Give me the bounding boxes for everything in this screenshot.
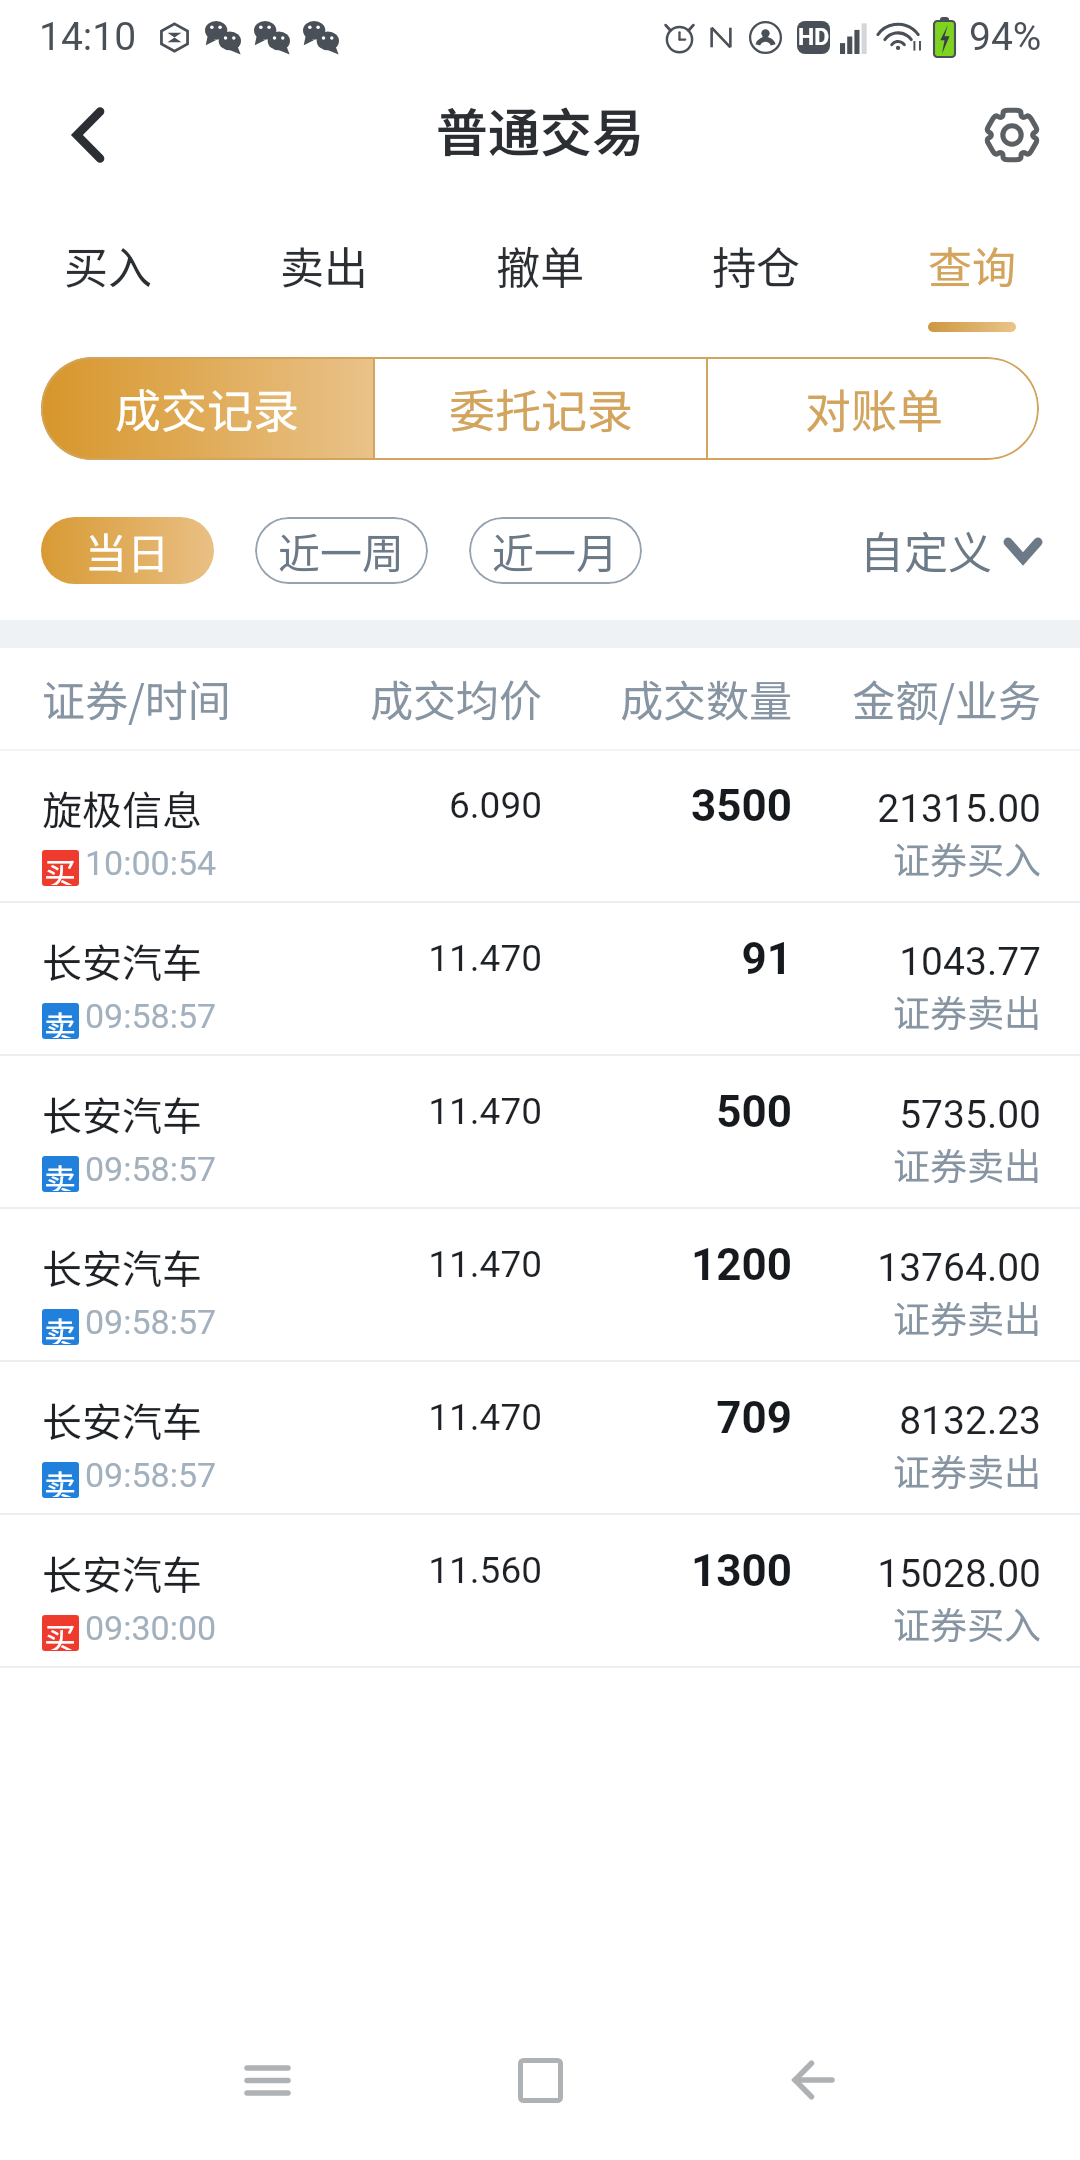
staticText: 成交记录 bbox=[115, 375, 299, 442]
staticText: 金额/业务 bbox=[792, 667, 1041, 729]
staticText: 91 bbox=[542, 933, 792, 985]
staticText: 委托记录 bbox=[449, 375, 633, 442]
staticText: 长安汽车 bbox=[42, 1238, 202, 1296]
staticText: 09:30:00 bbox=[85, 1608, 217, 1648]
staticText: 证券卖出 bbox=[792, 1290, 1041, 1344]
staticText: 09:58:57 bbox=[85, 1149, 217, 1189]
staticText: 11.470 bbox=[344, 1090, 542, 1133]
button[interactable]: 近一月 bbox=[469, 517, 642, 584]
button[interactable]: 卖出 bbox=[216, 190, 432, 357]
staticText: 15028.00 bbox=[792, 1551, 1041, 1597]
staticText: 长安汽车 bbox=[42, 1544, 202, 1602]
button[interactable]: Settings bbox=[977, 100, 1047, 170]
button[interactable]: Menu bbox=[187, 2000, 347, 2160]
button[interactable]: 自定义 bbox=[860, 518, 1038, 582]
button[interactable]: 买入 bbox=[0, 190, 216, 357]
staticText: 14:10 bbox=[39, 14, 137, 60]
staticText: 持仓 bbox=[712, 233, 800, 297]
button[interactable]: 长安汽车 bbox=[0, 1362, 1080, 1515]
staticText: 成交数量 bbox=[542, 667, 792, 729]
staticText: 查询 bbox=[928, 233, 1016, 297]
staticText: 证券卖出 bbox=[792, 984, 1041, 1038]
staticText: 11.470 bbox=[344, 1243, 542, 1286]
staticText: 1043.77 bbox=[792, 939, 1041, 985]
staticText: 94% bbox=[969, 14, 1042, 60]
staticText: 5735.00 bbox=[792, 1092, 1041, 1138]
button[interactable]: 长安汽车 bbox=[0, 1515, 1080, 1668]
button[interactable]: 长安汽车 bbox=[0, 1056, 1080, 1209]
staticText: 长安汽车 bbox=[42, 1391, 202, 1449]
button[interactable]: Home bbox=[460, 2000, 620, 2160]
staticText: 证券买入 bbox=[792, 831, 1041, 885]
staticText: 撤单 bbox=[496, 233, 584, 297]
staticText: HD bbox=[798, 24, 830, 51]
button[interactable]: 撤单 bbox=[432, 190, 648, 357]
staticText: 卖 bbox=[44, 1156, 77, 1191]
button[interactable]: 近一周 bbox=[255, 517, 428, 584]
staticText: 买入 bbox=[64, 233, 152, 297]
staticText: 成交均价 bbox=[344, 667, 542, 729]
staticText: 自定义 bbox=[860, 518, 992, 582]
staticText: 卖 bbox=[44, 1462, 77, 1497]
button[interactable]: 旋极信息 bbox=[0, 750, 1080, 903]
staticText: 09:58:57 bbox=[85, 1455, 217, 1495]
staticText: 09:58:57 bbox=[85, 996, 217, 1036]
staticText: 8132.23 bbox=[792, 1398, 1041, 1444]
staticText: 13764.00 bbox=[792, 1245, 1041, 1291]
staticText: 当日 bbox=[85, 520, 170, 581]
staticText: 证券/时间 bbox=[42, 667, 344, 729]
button[interactable]: 对账单 bbox=[708, 357, 1039, 460]
button[interactable]: 委托记录 bbox=[375, 357, 706, 460]
staticText: 09:58:57 bbox=[85, 1302, 217, 1342]
staticText: 11.470 bbox=[344, 1396, 542, 1439]
staticText: 709 bbox=[542, 1392, 792, 1444]
staticText: 11.560 bbox=[344, 1549, 542, 1592]
staticText: 旋极信息 bbox=[42, 779, 202, 837]
staticText: 近一周 bbox=[278, 520, 405, 581]
staticText: 6.090 bbox=[344, 784, 542, 827]
staticText: 卖 bbox=[44, 1309, 77, 1344]
button[interactable]: Back bbox=[733, 2000, 893, 2160]
staticText: 普通交易 bbox=[436, 92, 645, 167]
button[interactable]: 成交记录 bbox=[41, 357, 373, 460]
staticText: 1300 bbox=[542, 1545, 792, 1597]
staticText: 10:00:54 bbox=[85, 843, 217, 883]
staticText: 长安汽车 bbox=[42, 932, 202, 990]
button[interactable]: 长安汽车 bbox=[0, 903, 1080, 1056]
staticText: 买 bbox=[44, 1615, 77, 1650]
staticText: 500 bbox=[542, 1086, 792, 1138]
staticText: 卖 bbox=[44, 1003, 77, 1038]
staticText: 3500 bbox=[542, 780, 792, 832]
button[interactable]: 当日 bbox=[41, 517, 214, 584]
staticText: 近一月 bbox=[492, 520, 619, 581]
staticText: 对账单 bbox=[805, 375, 943, 442]
staticText: 长安汽车 bbox=[42, 1085, 202, 1143]
button[interactable]: Back bbox=[51, 98, 125, 172]
staticText: 买 bbox=[44, 850, 77, 885]
button[interactable]: 查询 bbox=[864, 190, 1080, 357]
button[interactable]: 持仓 bbox=[648, 190, 864, 357]
staticText: 证券买入 bbox=[792, 1596, 1041, 1650]
staticText: 卖出 bbox=[280, 233, 368, 297]
button[interactable]: 长安汽车 bbox=[0, 1209, 1080, 1362]
staticText: 证券卖出 bbox=[792, 1443, 1041, 1497]
staticText: 21315.00 bbox=[792, 786, 1041, 832]
staticText: 11.470 bbox=[344, 937, 542, 980]
staticText: 证券卖出 bbox=[792, 1137, 1041, 1191]
staticText: 1200 bbox=[542, 1239, 792, 1291]
